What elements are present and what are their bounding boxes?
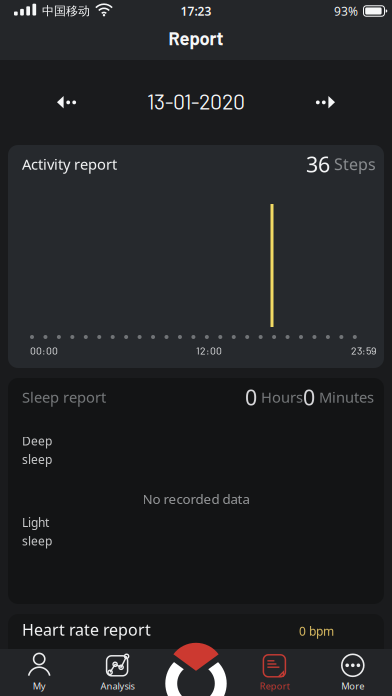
button[interactable]: [315, 82, 392, 123]
staticText: Hours: [257, 387, 303, 407]
staticText: Activity report: [22, 154, 117, 174]
staticText: 0 bpm: [299, 623, 334, 639]
staticText: 12:00: [196, 344, 222, 356]
button[interactable]: Analysis: [78, 649, 157, 696]
staticText: Sleep report: [22, 387, 106, 407]
button[interactable]: Report: [235, 649, 314, 696]
staticText: 23:59: [351, 344, 376, 356]
staticText: No recorded data: [142, 490, 249, 508]
staticText: Light sleep: [22, 514, 52, 549]
button[interactable]: More: [314, 649, 392, 696]
staticText: Steps: [330, 153, 376, 175]
staticText: My: [33, 680, 46, 692]
staticText: Deep sleep: [22, 433, 52, 467]
staticText: 93%: [334, 3, 358, 19]
staticText: 17:23: [180, 3, 211, 19]
staticText: 00:00: [30, 344, 58, 356]
staticText: Heart rate report: [22, 619, 151, 640]
staticText: 36: [306, 150, 330, 178]
staticText: Analysis: [101, 680, 135, 692]
button[interactable]: My: [0, 649, 78, 696]
staticText: 0: [245, 383, 257, 411]
staticText: Minutes: [315, 387, 374, 407]
staticText: Report: [168, 27, 223, 49]
button[interactable]: 13-01-2020: [147, 90, 245, 115]
button[interactable]: [0, 82, 77, 123]
staticText: 中国移动: [42, 4, 90, 18]
staticText: Report: [259, 680, 289, 692]
staticText: 13-01-2020: [147, 88, 245, 114]
staticText: 0: [303, 383, 315, 411]
staticText: More: [341, 680, 364, 692]
button[interactable]: [157, 649, 235, 696]
